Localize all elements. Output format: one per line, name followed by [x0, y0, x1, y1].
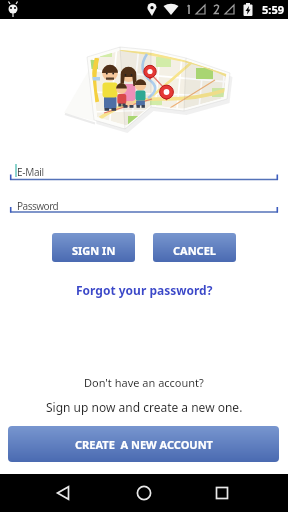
- button[interactable]: CANCEL: [153, 233, 236, 262]
- button[interactable]: E-Mail: [10, 162, 278, 181]
- button[interactable]: Password: [10, 196, 278, 214]
- staticText: Sign up now and create a new one.: [46, 399, 243, 415]
- button[interactable]: Forgot your password?: [76, 282, 213, 298]
- button[interactable]: [124, 474, 164, 512]
- button[interactable]: [202, 474, 242, 512]
- button[interactable]: [43, 474, 83, 512]
- staticText: CREATE A NEW ACCOUNT: [75, 437, 213, 452]
- staticText: Don't have an account?: [84, 375, 204, 390]
- staticText: E-Mail: [17, 165, 44, 179]
- staticText: CANCEL: [173, 243, 216, 258]
- button[interactable]: SIGN IN: [52, 233, 135, 262]
- button[interactable]: CREATE A NEW ACCOUNT: [8, 426, 279, 462]
- staticText: 5:59: [262, 2, 284, 17]
- staticText: SIGN IN: [72, 243, 116, 258]
- staticText: Password: [17, 199, 59, 213]
